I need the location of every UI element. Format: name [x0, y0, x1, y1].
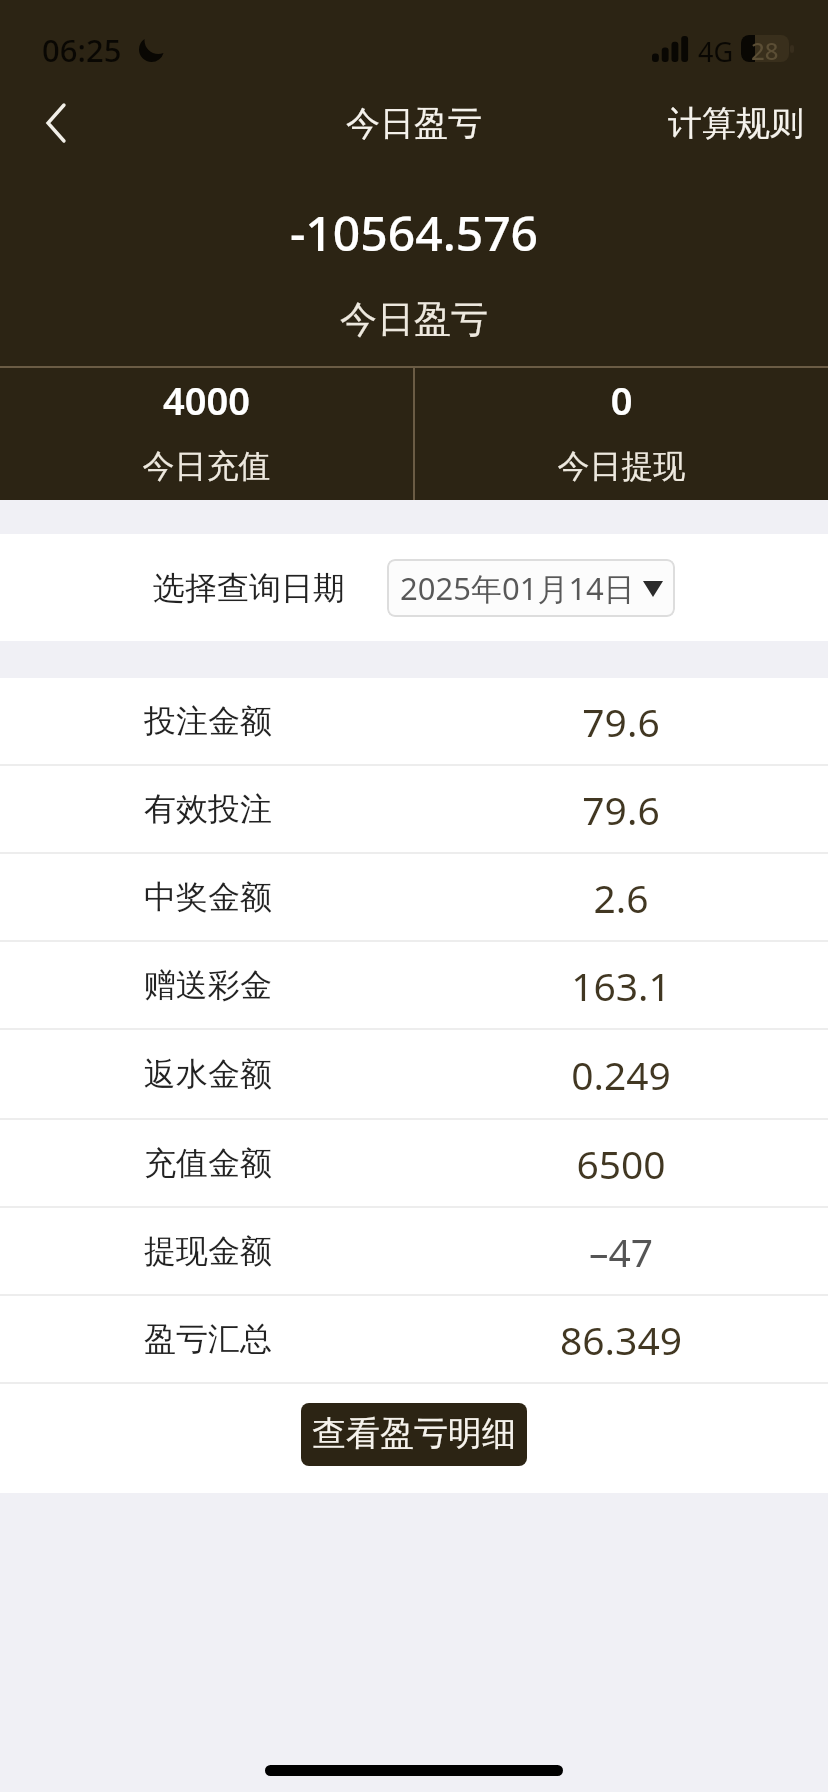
staticText: 4000: [0, 374, 413, 426]
staticText: 2.6: [471, 871, 771, 924]
staticText: 28: [751, 35, 779, 61]
staticText: 有效投注: [144, 789, 272, 829]
button[interactable]: 0: [415, 368, 828, 500]
staticText: –47: [471, 1225, 771, 1278]
button[interactable]: 查看盈亏明细: [301, 1403, 527, 1466]
staticText: 充值金额: [144, 1143, 272, 1183]
staticText: 今日提现: [415, 446, 828, 486]
staticText: 计算规则: [668, 102, 804, 145]
staticText: 2025年01月14日: [400, 567, 635, 609]
staticText: 查看盈亏明细: [312, 1412, 516, 1455]
button[interactable]: 充值金额: [0, 1120, 828, 1206]
staticText: 79.6: [471, 783, 771, 836]
button[interactable]: 中奖金额: [0, 854, 828, 940]
staticText: 79.6: [471, 695, 771, 748]
staticText: 163.1: [471, 959, 771, 1012]
button[interactable]: 投注金额: [0, 678, 828, 764]
staticText: 今日盈亏: [0, 102, 828, 145]
button[interactable]: 4000: [0, 368, 413, 500]
staticText: 06:25: [42, 29, 122, 71]
staticText: 今日盈亏: [0, 296, 828, 343]
button[interactable]: 有效投注: [0, 766, 828, 852]
button[interactable]: Back: [6, 88, 106, 168]
staticText: 投注金额: [144, 701, 272, 741]
staticText: 6500: [471, 1137, 771, 1190]
staticText: 盈亏汇总: [144, 1319, 272, 1359]
staticText: 今日充值: [0, 446, 413, 486]
staticText: 选择查询日期: [153, 568, 345, 608]
button[interactable]: 盈亏汇总: [0, 1296, 828, 1382]
button[interactable]: 计算规则: [668, 102, 804, 145]
staticText: 返水金额: [144, 1054, 272, 1094]
staticText: 86.349: [471, 1313, 771, 1366]
staticText: 0.249: [471, 1048, 771, 1101]
staticText: 中奖金额: [144, 877, 272, 917]
staticText: 0: [415, 374, 828, 426]
button[interactable]: 返水金额: [0, 1030, 828, 1118]
button[interactable]: 赠送彩金: [0, 942, 828, 1028]
staticText: 赠送彩金: [144, 965, 272, 1005]
button[interactable]: 2025年01月14日: [387, 559, 675, 617]
staticText: -10564.576: [0, 200, 828, 265]
staticText: 提现金额: [144, 1231, 272, 1271]
button[interactable]: 提现金额: [0, 1208, 828, 1294]
staticText: 4G: [698, 33, 734, 70]
